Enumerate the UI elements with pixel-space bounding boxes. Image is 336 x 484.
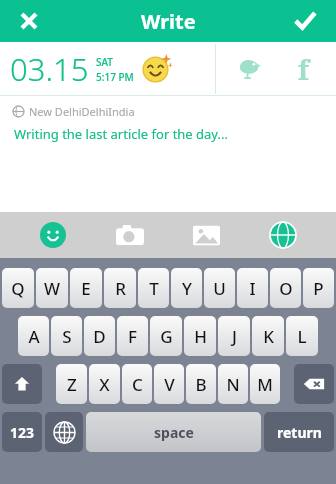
button[interactable]: D: [84, 316, 115, 356]
staticText: Z: [67, 373, 77, 396]
button[interactable]: R: [104, 268, 136, 308]
staticText: f: [298, 51, 309, 88]
button[interactable]: return: [264, 412, 334, 452]
button[interactable]: Y: [171, 268, 202, 308]
staticText: Q: [11, 277, 25, 300]
staticText: J: [232, 325, 237, 348]
button[interactable]: I: [237, 268, 268, 308]
staticText: P: [313, 277, 324, 300]
button[interactable]: Z: [56, 364, 87, 404]
staticText: 03.15: [10, 48, 89, 90]
button[interactable]: Change keyboard: [45, 412, 83, 452]
button[interactable]: U: [204, 268, 235, 308]
staticText: T: [149, 277, 159, 300]
staticText: G: [160, 325, 173, 348]
staticText: S: [62, 325, 72, 348]
staticText: A: [28, 325, 40, 348]
button[interactable]: C: [122, 364, 152, 404]
staticText: Write: [141, 8, 196, 35]
button[interactable]: X: [89, 364, 120, 404]
button[interactable]: Location: [260, 212, 306, 258]
button[interactable]: L: [286, 316, 318, 356]
staticText: K: [263, 325, 274, 348]
button[interactable]: B: [186, 364, 216, 404]
staticText: Writing the last article for the day...: [14, 125, 228, 143]
staticText: N: [226, 373, 240, 396]
staticText: return: [277, 423, 322, 442]
staticText: U: [213, 277, 226, 300]
button[interactable]: 03.15: [0, 42, 215, 96]
staticText: M: [257, 373, 273, 396]
staticText: I: [249, 277, 256, 300]
button[interactable]: A: [18, 316, 49, 356]
button[interactable]: space: [86, 412, 261, 452]
button[interactable]: P: [303, 268, 334, 308]
staticText: 123: [10, 423, 35, 442]
staticText: C: [132, 373, 143, 396]
button[interactable]: Camera: [107, 212, 153, 258]
staticText: New DelhiDelhiIndia: [29, 104, 135, 119]
staticText: Y: [182, 277, 192, 300]
button[interactable]: M: [250, 364, 280, 404]
button[interactable]: Backspace: [294, 364, 334, 404]
button[interactable]: T: [138, 268, 169, 308]
button[interactable]: 123: [2, 412, 42, 452]
button[interactable]: O: [270, 268, 301, 308]
button[interactable]: Mood: [140, 54, 170, 84]
button[interactable]: Emoji: [30, 212, 76, 258]
staticText: D: [93, 325, 106, 348]
button[interactable]: H: [184, 316, 216, 356]
staticText: W: [44, 277, 60, 300]
staticText: R: [115, 277, 126, 300]
button[interactable]: Done: [282, 0, 328, 42]
staticText: B: [195, 373, 207, 396]
staticText: E: [81, 277, 91, 300]
button[interactable]: F: [117, 316, 148, 356]
staticText: SAT: [96, 55, 113, 69]
button[interactable]: K: [252, 316, 284, 356]
staticText: space: [154, 423, 194, 442]
button[interactable]: J: [218, 316, 250, 356]
button[interactable]: Twitter: [227, 47, 271, 91]
button[interactable]: W: [36, 268, 68, 308]
staticText: L: [297, 325, 307, 348]
button[interactable]: Facebook: [281, 47, 325, 91]
button[interactable]: V: [154, 364, 184, 404]
button[interactable]: Shift: [2, 364, 42, 404]
staticText: 5:17 PM: [96, 70, 134, 84]
button[interactable]: N: [218, 364, 248, 404]
staticText: O: [279, 277, 293, 300]
button[interactable]: E: [70, 268, 102, 308]
button[interactable]: Photo: [183, 212, 229, 258]
button[interactable]: Close: [6, 0, 52, 42]
staticText: V: [164, 373, 175, 396]
staticText: X: [99, 373, 110, 396]
button[interactable]: S: [51, 316, 82, 356]
staticText: H: [194, 325, 207, 348]
button[interactable]: New DelhiDelhiIndia: [13, 104, 135, 119]
button[interactable]: Q: [2, 268, 34, 308]
staticText: F: [128, 325, 137, 348]
button[interactable]: G: [150, 316, 182, 356]
